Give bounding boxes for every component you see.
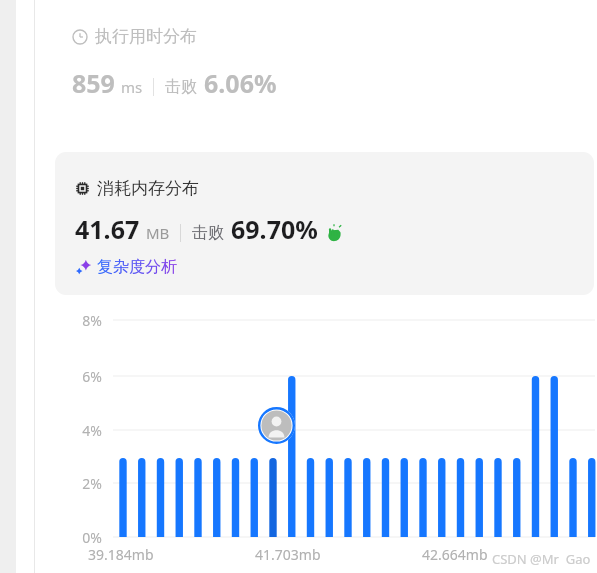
staticText: 41.703mb xyxy=(255,545,321,564)
button[interactable]: Memory xyxy=(55,152,594,295)
staticText: 击败 xyxy=(192,223,224,243)
button[interactable]: 复杂度分析 xyxy=(75,257,177,277)
staticText: 39.184mb xyxy=(88,545,154,564)
staticText: 0% xyxy=(66,528,102,547)
staticText: 6.06% xyxy=(204,66,277,100)
staticText: ms xyxy=(121,77,143,97)
staticText: MB xyxy=(146,223,170,243)
other: Runtime xyxy=(72,29,88,45)
staticText: 42.664mb xyxy=(422,545,488,564)
other: Memory xyxy=(75,181,90,196)
staticText: 6% xyxy=(66,367,102,386)
staticText: 859 xyxy=(72,66,115,100)
staticText: 4% xyxy=(66,421,102,440)
staticText: CSDN @Mr Gao xyxy=(492,550,591,568)
staticText: 复杂度分析 xyxy=(97,257,177,277)
staticText: 击败 xyxy=(165,77,197,97)
staticText: 执行用时分布 xyxy=(95,26,197,47)
staticText: 2% xyxy=(66,474,102,493)
staticText: 消耗内存分布 xyxy=(97,178,199,199)
staticText: 69.70% xyxy=(231,212,318,246)
button[interactable]: Runtime xyxy=(72,26,197,47)
other: Clap xyxy=(325,224,343,242)
staticText: 41.67 xyxy=(75,212,140,246)
staticText: 8% xyxy=(66,311,102,330)
